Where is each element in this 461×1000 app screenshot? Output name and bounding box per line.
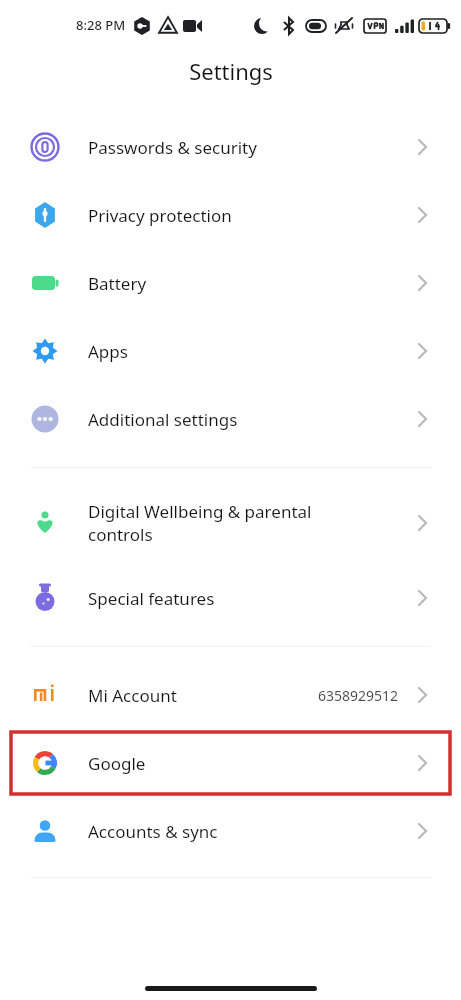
button[interactable]: Additional settings	[0, 385, 461, 453]
button[interactable]: Mi Account	[0, 661, 461, 729]
staticText: Battery	[88, 272, 413, 295]
button[interactable]: Apps	[0, 317, 461, 385]
staticText: Accounts & sync	[88, 820, 413, 843]
staticText: Google	[88, 752, 413, 775]
staticText: Digital Wellbeing & parental controls	[88, 500, 413, 546]
button[interactable]: Privacy protection	[0, 181, 461, 249]
button[interactable]: Google	[11, 732, 450, 794]
staticText: Additional settings	[88, 408, 413, 431]
button[interactable]: Digital Wellbeing & parental controls	[0, 482, 461, 564]
button[interactable]: Battery	[0, 249, 461, 317]
button[interactable]: Special features	[0, 564, 461, 632]
staticText: Mi Account	[88, 684, 318, 707]
staticText: Apps	[88, 340, 413, 363]
staticText: Special features	[88, 587, 413, 610]
staticText: Settings	[189, 56, 273, 86]
staticText: Passwords & security	[88, 136, 413, 159]
staticText: Privacy protection	[88, 204, 413, 227]
staticText: 6358929512	[318, 686, 399, 705]
staticText: 8:28 PM	[76, 16, 126, 34]
button[interactable]: Passwords & security	[0, 113, 461, 181]
button[interactable]: Accounts & sync	[0, 797, 461, 865]
